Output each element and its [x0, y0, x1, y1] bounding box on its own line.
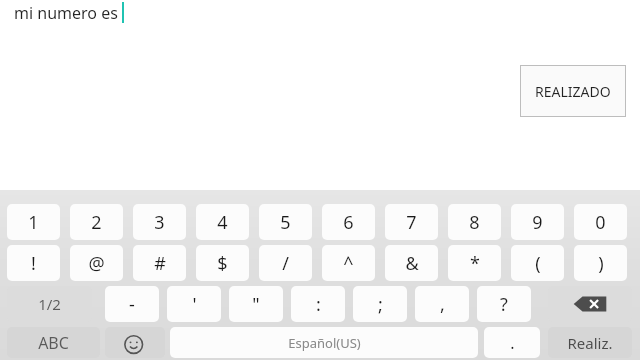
- staticText: /: [282, 251, 289, 276]
- staticText: (: [535, 251, 541, 276]
- button[interactable]: 9: [511, 204, 564, 240]
- staticText: ^: [343, 251, 354, 276]
- staticText: ABC: [38, 332, 69, 354]
- staticText: -: [129, 292, 135, 317]
- button[interactable]: 5: [259, 204, 312, 240]
- staticText: :: [316, 292, 321, 317]
- button[interactable]: REALIZADO: [520, 65, 626, 117]
- staticText: #: [154, 251, 166, 276]
- button[interactable]: Realiz.: [548, 327, 632, 358]
- staticText: ,: [440, 292, 445, 317]
- button[interactable]: Español(US): [170, 327, 478, 358]
- button[interactable]: &: [385, 245, 438, 281]
- staticText: ;: [378, 292, 383, 317]
- button[interactable]: Delete: [548, 286, 632, 322]
- staticText: 4: [217, 210, 228, 235]
- button[interactable]: 2: [70, 204, 123, 240]
- staticText: ': [192, 292, 197, 317]
- button[interactable]: ): [574, 245, 627, 281]
- button[interactable]: 6: [322, 204, 375, 240]
- staticText: 3: [154, 210, 165, 235]
- button[interactable]: 0: [574, 204, 627, 240]
- button[interactable]: @: [70, 245, 123, 281]
- button[interactable]: ABC: [7, 327, 100, 358]
- staticText: @: [88, 251, 105, 276]
- staticText: 7: [406, 210, 417, 235]
- staticText: 0: [595, 210, 606, 235]
- staticText: ": [252, 292, 260, 317]
- button[interactable]: /: [259, 245, 312, 281]
- button[interactable]: Emoji: [105, 327, 165, 358]
- button[interactable]: 8: [448, 204, 501, 240]
- staticText: 6: [343, 210, 354, 235]
- button[interactable]: ?: [477, 286, 531, 322]
- button[interactable]: 1/2: [7, 286, 92, 322]
- button[interactable]: $: [196, 245, 249, 281]
- staticText: 9: [532, 210, 543, 235]
- button[interactable]: #: [133, 245, 186, 281]
- staticText: mi numero es: [14, 2, 118, 24]
- staticText: 5: [280, 210, 291, 235]
- staticText: &: [405, 251, 419, 276]
- button[interactable]: (: [511, 245, 564, 281]
- button[interactable]: 4: [196, 204, 249, 240]
- button[interactable]: ': [167, 286, 221, 322]
- staticText: ): [598, 251, 604, 276]
- button[interactable]: 3: [133, 204, 186, 240]
- button[interactable]: -: [105, 286, 159, 322]
- button[interactable]: 7: [385, 204, 438, 240]
- button[interactable]: ^: [322, 245, 375, 281]
- staticText: 1/2: [38, 294, 61, 314]
- staticText: *: [470, 251, 480, 276]
- staticText: ?: [500, 292, 508, 317]
- button[interactable]: ": [229, 286, 283, 322]
- staticText: Realiz.: [567, 333, 613, 353]
- button[interactable]: 1: [7, 204, 60, 240]
- button[interactable]: .: [484, 327, 540, 358]
- button[interactable]: !: [7, 245, 60, 281]
- button[interactable]: *: [448, 245, 501, 281]
- staticText: 2: [91, 210, 102, 235]
- staticText: Español(US): [288, 334, 361, 352]
- staticText: $: [217, 251, 228, 276]
- staticText: !: [31, 251, 36, 276]
- staticText: REALIZADO: [535, 82, 611, 101]
- button[interactable]: ,: [415, 286, 469, 322]
- button[interactable]: :: [291, 286, 345, 322]
- staticText: .: [510, 332, 515, 354]
- staticText: 8: [469, 210, 480, 235]
- staticText: 1: [28, 210, 39, 235]
- button[interactable]: ;: [353, 286, 407, 322]
